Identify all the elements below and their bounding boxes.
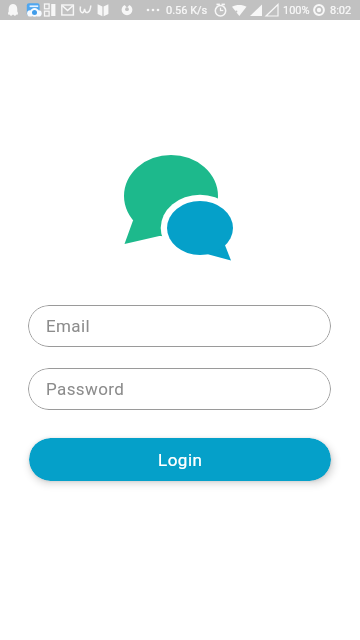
staticText: Login	[158, 450, 203, 470]
staticText: 8:02	[330, 4, 352, 17]
staticText: 100%	[283, 4, 310, 17]
button[interactable]: Email	[28, 305, 331, 347]
staticText: Password	[46, 379, 125, 399]
button[interactable]: Login	[29, 438, 331, 481]
staticText: 0.56 K/s	[166, 4, 208, 17]
button[interactable]: Password	[28, 368, 331, 410]
staticText: Email	[46, 316, 91, 336]
